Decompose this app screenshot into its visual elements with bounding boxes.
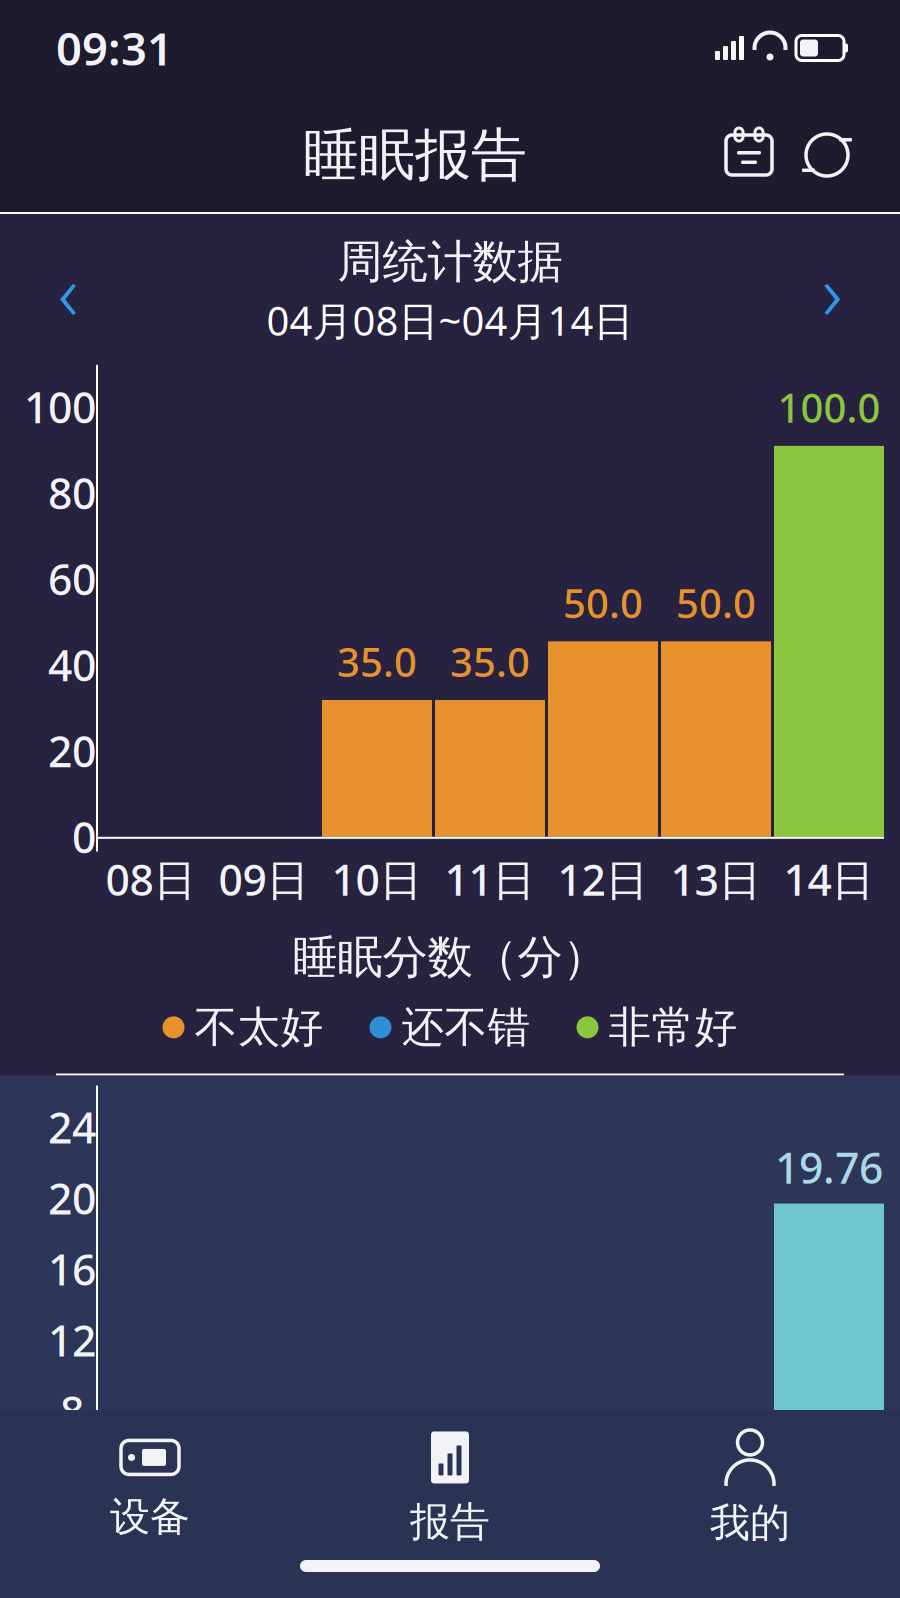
button[interactable]: 下一周: [790, 242, 874, 338]
button[interactable]: 设备: [0, 1420, 300, 1555]
staticText: 不太好: [194, 1001, 323, 1053]
staticText: 还不错: [401, 1001, 530, 1053]
staticText: ›: [822, 239, 842, 342]
button[interactable]: 选择日期: [710, 116, 788, 194]
staticText: 20: [48, 1170, 96, 1226]
staticText: 50.0: [676, 576, 756, 629]
staticText: 40: [48, 636, 96, 693]
staticText: 睡眠报告: [303, 121, 527, 189]
staticText: 100.0: [777, 381, 880, 434]
staticText: 35.0: [337, 635, 417, 688]
staticText: 80: [48, 464, 96, 521]
staticText: 周统计数据: [337, 234, 562, 290]
staticText: 睡眠分数（分）: [292, 929, 607, 985]
staticText: 08日: [105, 851, 196, 907]
staticText: ‹: [58, 239, 78, 342]
staticText: 报告: [410, 1497, 490, 1546]
staticText: 100: [24, 378, 96, 435]
staticText: 19.76: [775, 1139, 883, 1196]
staticText: 12日: [557, 851, 648, 907]
staticText: 10日: [331, 851, 422, 907]
staticText: 12: [48, 1312, 96, 1368]
button[interactable]: 刷新: [788, 116, 866, 194]
button[interactable]: 上一周: [26, 242, 110, 338]
staticText: 60: [48, 550, 96, 607]
staticText: 09:31: [56, 18, 173, 78]
button[interactable]: 我的: [600, 1414, 900, 1561]
staticText: 24: [48, 1099, 96, 1155]
staticText: 11日: [444, 851, 535, 907]
staticText: 设备: [110, 1492, 190, 1541]
staticText: 50.0: [563, 576, 643, 629]
staticText: 我的: [710, 1498, 790, 1547]
staticText: 04月08日~04月14日: [266, 294, 633, 347]
button[interactable]: 报告: [300, 1415, 600, 1560]
staticText: 35.0: [450, 635, 530, 688]
staticText: 20: [48, 722, 96, 779]
staticText: 8: [60, 1383, 84, 1439]
staticText: 13日: [670, 851, 761, 907]
staticText: 09日: [218, 851, 309, 907]
staticText: 16: [48, 1241, 96, 1297]
staticText: 0: [72, 808, 96, 865]
staticText: 14日: [783, 851, 874, 907]
staticText: 非常好: [608, 1001, 737, 1053]
